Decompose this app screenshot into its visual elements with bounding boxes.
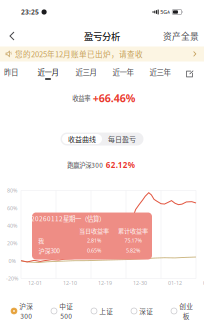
staticText: 12-10 [63,279,77,287]
staticText: 收益率 [72,93,90,103]
staticText: 75.17% [124,237,141,244]
staticText: 23:25 [21,8,39,16]
button[interactable]: 中证 [42,297,82,325]
staticText: 40% [7,222,17,229]
staticText: 盈亏分析 [84,29,120,43]
staticText: 昨日 [4,67,18,77]
staticText: 板 [183,311,190,321]
staticText: 上证 [99,306,113,316]
button[interactable]: 沪深 [2,297,42,325]
staticText: 62.12% [106,160,135,170]
staticText: 深证 [139,306,153,316]
staticText: 创业 [179,301,193,311]
staticText: 中证 [59,301,73,311]
staticText: 累计收益率 [118,226,148,235]
button[interactable]: 自定义日期 [182,64,198,84]
staticText: +66.46% [93,91,136,105]
staticText: 近三月 [75,67,96,77]
staticText: 80% [7,187,17,194]
button[interactable]: 每日盈亏 [102,134,142,144]
staticText: 12-01 [28,279,42,287]
staticText: 资产全景 [163,30,199,42]
staticText: 60% [7,205,17,212]
staticText: 01-21 [203,279,204,287]
staticText: 每日盈亏 [108,134,136,144]
button[interactable]: 近三月 [69,64,103,84]
button[interactable]: 上证 [82,297,122,325]
staticText: 20260112星期一（估算） [31,214,105,223]
staticText: 近一月 [37,67,58,77]
button[interactable]: 资产全景 [161,27,201,45]
staticText: 300 [20,311,32,321]
staticText: 12-19 [98,279,112,287]
button[interactable]: 昨日 [0,64,28,84]
staticText: 近三年 [149,67,170,77]
staticText: 2.81% [87,237,101,244]
staticText: -20% [6,275,18,282]
button[interactable]: 深证 [122,297,162,325]
button[interactable]: 返回 [4,27,20,45]
staticText: 500 [60,311,72,321]
staticText: 0.65% [87,247,101,254]
staticText: 5G [160,8,167,16]
staticText: 我 [38,236,44,245]
staticText: A [167,9,170,15]
staticText: 5.82% [126,247,140,254]
staticText: 您的2025年12月账单已出炉，请查收 [15,48,143,59]
button[interactable]: 您的2025年12月账单已出炉，请查收 [0,46,204,61]
staticText: 20% [7,240,17,247]
staticText: 近一年 [112,67,133,77]
button[interactable]: 近一年 [106,64,140,84]
staticText: 沪深 [19,301,33,311]
staticText: 12-30 [133,279,147,287]
staticText: 收益曲线 [68,134,96,144]
button[interactable]: 创业 [162,297,202,325]
staticText: 01-12 [168,279,182,287]
staticText: 跑赢沪深300 [67,160,103,170]
button[interactable]: 近一月 [31,64,65,84]
button[interactable]: 收益曲线 [62,134,102,144]
staticText: 0% [8,257,15,264]
staticText: 沪深300 [38,246,59,255]
staticText: 当日收益率 [79,226,109,235]
button[interactable]: 近三年 [143,64,177,84]
